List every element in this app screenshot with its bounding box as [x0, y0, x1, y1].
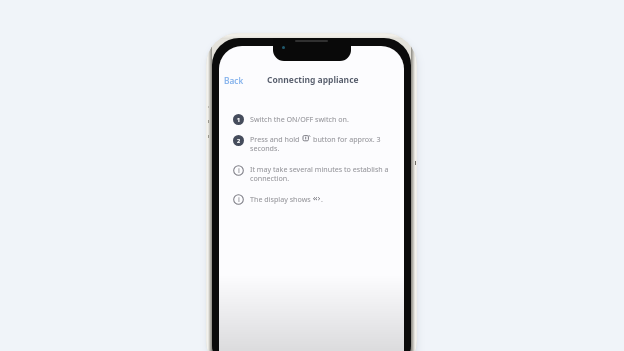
staticText: It may take several minutes to establish… [250, 164, 390, 183]
staticText: 2 [237, 137, 241, 145]
staticText: The display shows [250, 194, 311, 204]
staticText: i [238, 195, 240, 205]
staticText: Back [224, 75, 244, 85]
button[interactable]: Back [219, 69, 250, 87]
staticText: seconds. [250, 143, 280, 153]
button[interactable] [230, 192, 392, 208]
staticText: Connecting appliance [267, 74, 359, 86]
staticText: Press and hold [250, 134, 300, 144]
button[interactable] [230, 112, 392, 128]
button[interactable] [230, 162, 392, 186]
button[interactable] [230, 132, 392, 156]
staticText: button for approx. 3 [313, 134, 381, 144]
staticText: Switch the ON/OFF switch on. [250, 114, 349, 124]
staticText: i [238, 166, 240, 176]
staticText: 1 [237, 116, 241, 124]
staticText: . [321, 194, 323, 204]
